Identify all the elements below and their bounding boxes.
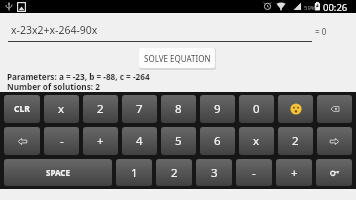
button[interactable]: 8 — [161, 95, 196, 123]
staticText: 7 — [136, 101, 143, 117]
staticText: 4 — [136, 133, 143, 149]
button[interactable]: SOLVE EQUATION — [139, 48, 215, 68]
button[interactable]: x — [239, 127, 274, 155]
staticText: 6 — [214, 133, 221, 149]
staticText: + — [97, 133, 104, 149]
button[interactable]: x — [44, 95, 79, 123]
staticText: x — [58, 101, 65, 117]
staticText: 2 — [292, 133, 299, 149]
button[interactable] — [278, 95, 313, 123]
staticText: x-23x2+x-264-90x — [11, 23, 98, 37]
button[interactable]: + — [83, 127, 118, 155]
button[interactable] — [317, 127, 352, 155]
staticText: - — [252, 165, 256, 181]
staticText: 59% — [304, 4, 316, 12]
button[interactable]: 2 — [156, 159, 192, 186]
button[interactable] — [317, 95, 352, 123]
staticText: 1 — [131, 165, 138, 181]
staticText: 3 — [211, 165, 218, 181]
button[interactable]: 4 — [122, 127, 157, 155]
staticText: SOLVE EQUATION — [144, 53, 211, 64]
button[interactable]: 2 — [278, 127, 313, 155]
staticText: 00:26 — [323, 1, 348, 14]
button[interactable] — [316, 159, 352, 186]
button[interactable]: 9 — [200, 95, 235, 123]
button[interactable]: 5 — [161, 127, 196, 155]
button[interactable]: 1 — [116, 159, 152, 186]
staticText: 2 — [97, 101, 104, 117]
staticText: CLR — [14, 103, 30, 115]
staticText: Number of solutions: 2 — [7, 81, 100, 92]
button[interactable]: - — [44, 127, 79, 155]
button[interactable]: 3 — [196, 159, 232, 186]
button[interactable]: 7 — [122, 95, 157, 123]
staticText: 0 — [253, 101, 260, 117]
button[interactable]: SPACE — [4, 159, 112, 186]
button[interactable]: 6 — [200, 127, 235, 155]
button[interactable]: 0 — [239, 95, 274, 123]
staticText: 5 — [175, 133, 182, 149]
staticText: 8 — [175, 101, 182, 117]
staticText: = 0 — [315, 26, 327, 37]
staticText: Parameters: a = -23, b = -88, c = -264 — [7, 71, 150, 82]
staticText: 2 — [171, 165, 178, 181]
staticText: - — [60, 133, 64, 149]
button[interactable]: - — [236, 159, 272, 186]
button[interactable] — [4, 127, 40, 155]
staticText: 9 — [214, 101, 221, 117]
button[interactable]: CLR — [4, 95, 40, 123]
staticText: SPACE — [46, 167, 70, 178]
staticText: + — [291, 165, 298, 181]
button[interactable]: 2 — [83, 95, 118, 123]
button[interactable]: + — [276, 159, 312, 186]
staticText: x — [253, 133, 260, 149]
